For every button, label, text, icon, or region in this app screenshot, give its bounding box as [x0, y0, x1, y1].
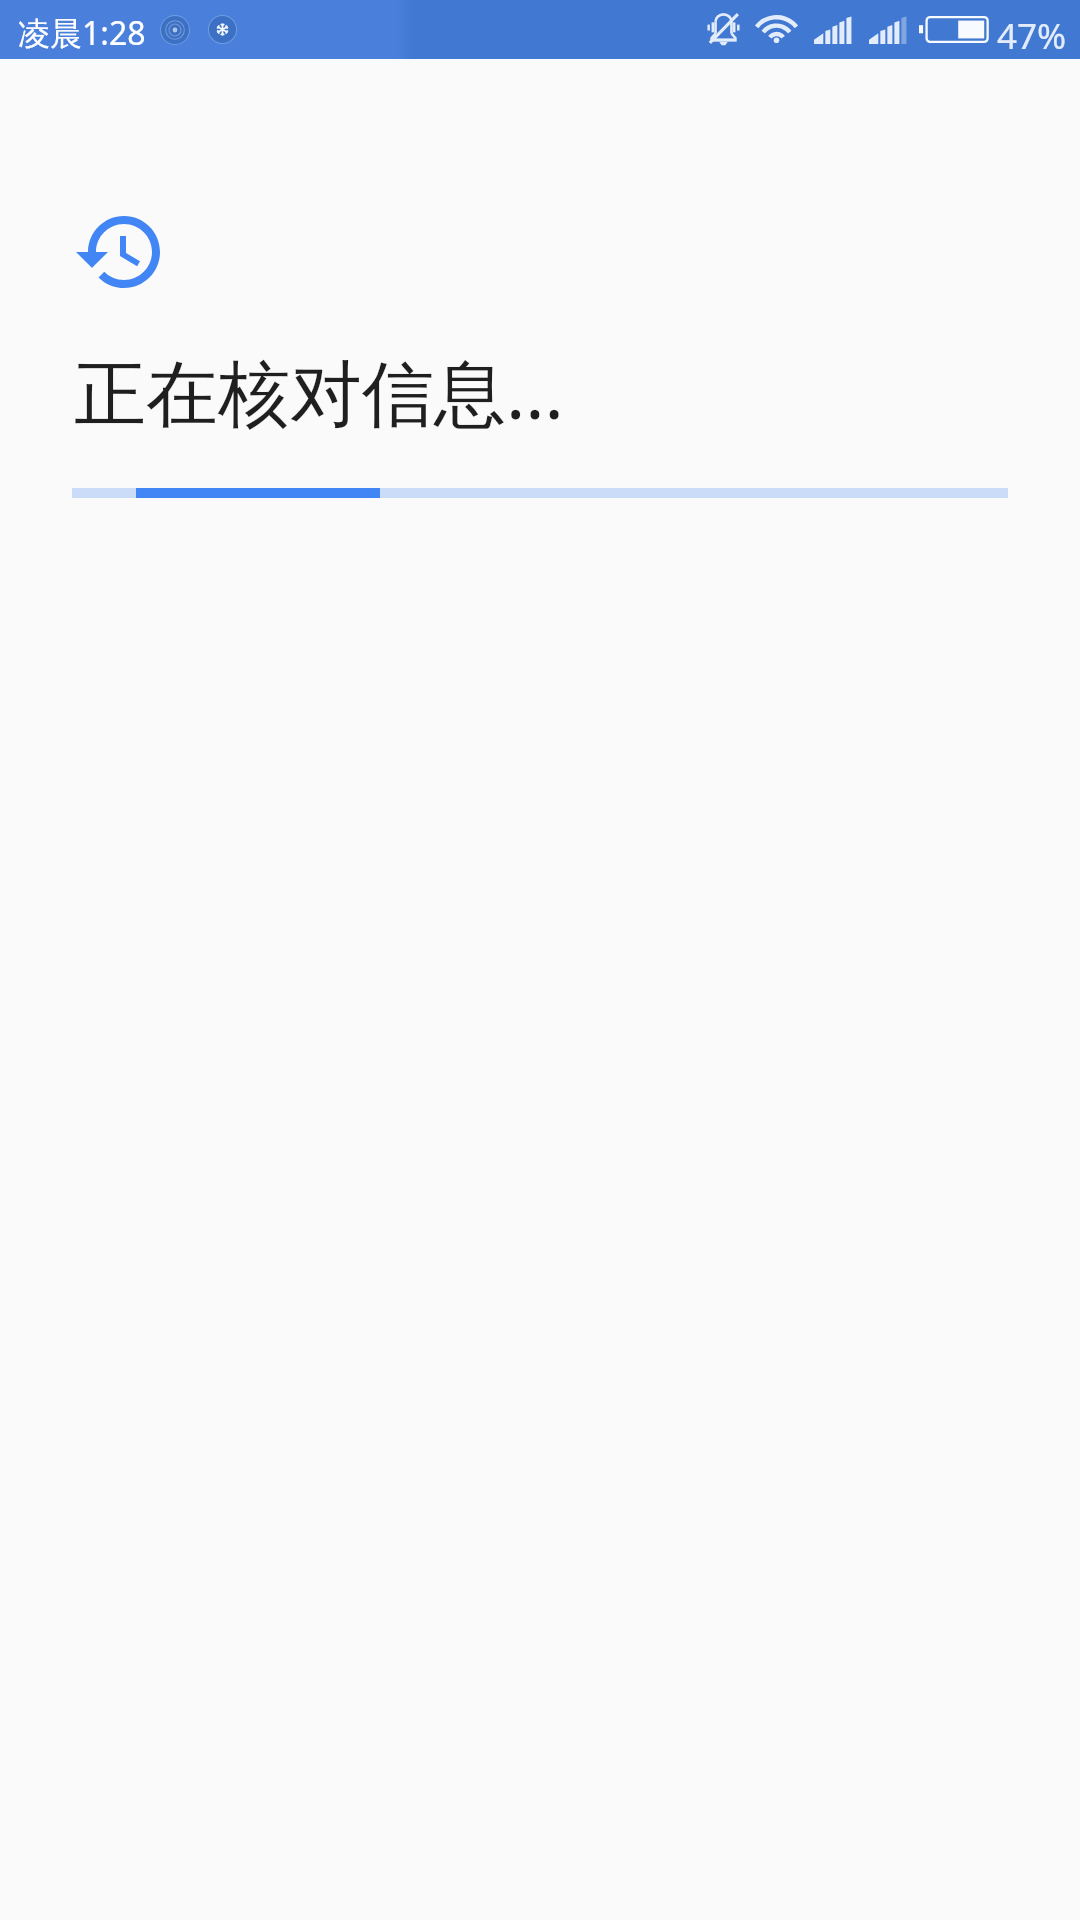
- staticText: 正在核对信息...: [74, 342, 564, 440]
- other: History: [72, 204, 168, 300]
- button[interactable]: History: [72, 204, 168, 300]
- staticText: 47%: [997, 12, 1067, 60]
- staticText: 凌晨1:28: [18, 11, 146, 55]
